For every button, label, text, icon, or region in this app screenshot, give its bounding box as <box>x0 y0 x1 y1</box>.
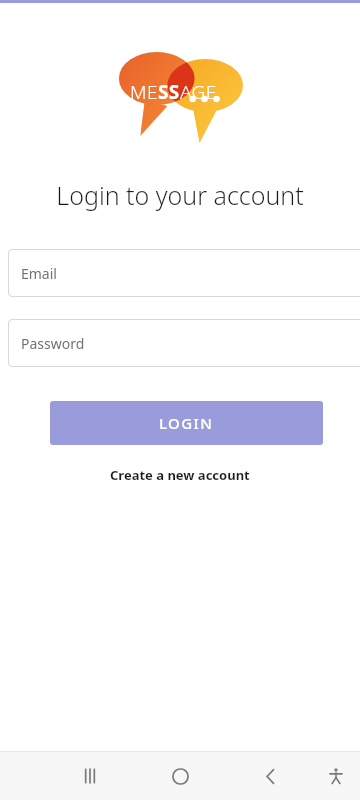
staticText: Password <box>21 334 85 353</box>
button[interactable]: Accessibility <box>316 756 356 796</box>
staticText: Create a new account <box>110 466 250 484</box>
staticText: SS <box>158 79 180 105</box>
button[interactable]: Create a new account <box>110 466 250 484</box>
staticText: Login to your account <box>56 178 304 212</box>
button[interactable]: Email <box>8 249 360 297</box>
staticText: ME <box>130 79 158 105</box>
staticText: Email <box>21 264 57 283</box>
button[interactable]: Recent apps <box>66 752 114 800</box>
staticText: AGE <box>180 79 217 105</box>
staticText: LOGIN <box>159 413 214 433</box>
button[interactable]: Back <box>246 752 294 800</box>
button[interactable]: LOGIN <box>50 401 323 445</box>
button[interactable]: Home <box>156 752 204 800</box>
button[interactable]: Password <box>8 319 360 367</box>
